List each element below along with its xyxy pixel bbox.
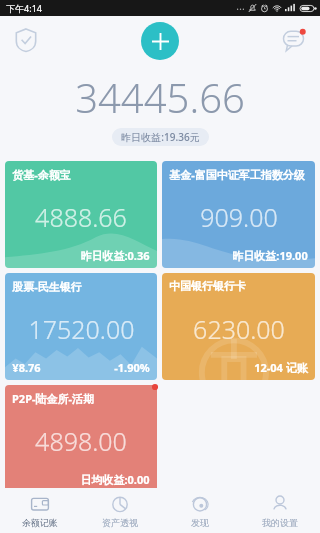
staticText: 4898.00 <box>35 424 127 458</box>
staticText: 34445.66 <box>75 70 245 124</box>
staticText: 基金-富国中证军工指数分级 <box>169 167 305 182</box>
button[interactable]: 中国银行银行卡 <box>162 273 315 380</box>
staticText: 发现 <box>191 517 209 528</box>
button[interactable]: 发现 <box>160 488 240 533</box>
button[interactable]: 消息 <box>277 23 311 57</box>
button[interactable]: 股票-民生银行 <box>5 273 157 380</box>
staticText: 中国银行银行卡 <box>169 279 246 293</box>
staticText: 货基-余额宝 <box>12 167 71 182</box>
staticText: 余额记账 <box>22 517 58 528</box>
button[interactable]: 资产透视 <box>80 488 160 533</box>
staticText: 6230.00 <box>193 312 285 346</box>
staticText: 资产透视 <box>102 517 138 528</box>
button[interactable]: 昨日收益:19.36元 <box>112 128 209 146</box>
staticText: ¥8.76 <box>12 360 41 375</box>
staticText: 日均收益:0.00 <box>80 472 150 487</box>
button[interactable]: P2P-陆金所-活期 <box>5 385 157 492</box>
staticText: 909.00 <box>200 200 278 234</box>
staticText: 12-04 记账 <box>254 360 308 375</box>
staticText: 我的设置 <box>262 517 298 528</box>
button[interactable]: 基金-富国中证军工指数分级 <box>162 161 315 268</box>
button[interactable]: 安全检测 <box>9 23 43 57</box>
staticText: 4888.66 <box>35 200 127 234</box>
button[interactable]: 余额记账 <box>0 488 80 533</box>
staticText: 昨日收益:0.36 <box>80 248 150 263</box>
button[interactable]: 我的设置 <box>240 488 320 533</box>
staticText: 昨日收益:19.36元 <box>121 130 200 144</box>
staticText: P2P-陆金所-活期 <box>12 391 94 406</box>
staticText: 昨日收益:19.00 <box>232 248 308 263</box>
staticText: 17520.00 <box>28 312 135 346</box>
button[interactable]: 添加记账 <box>141 22 179 60</box>
button[interactable]: 货基-余额宝 <box>5 161 157 268</box>
staticText: 股票-民生银行 <box>12 279 82 294</box>
staticText: 下午4:14 <box>6 2 42 14</box>
staticText: -1.90% <box>114 360 150 375</box>
